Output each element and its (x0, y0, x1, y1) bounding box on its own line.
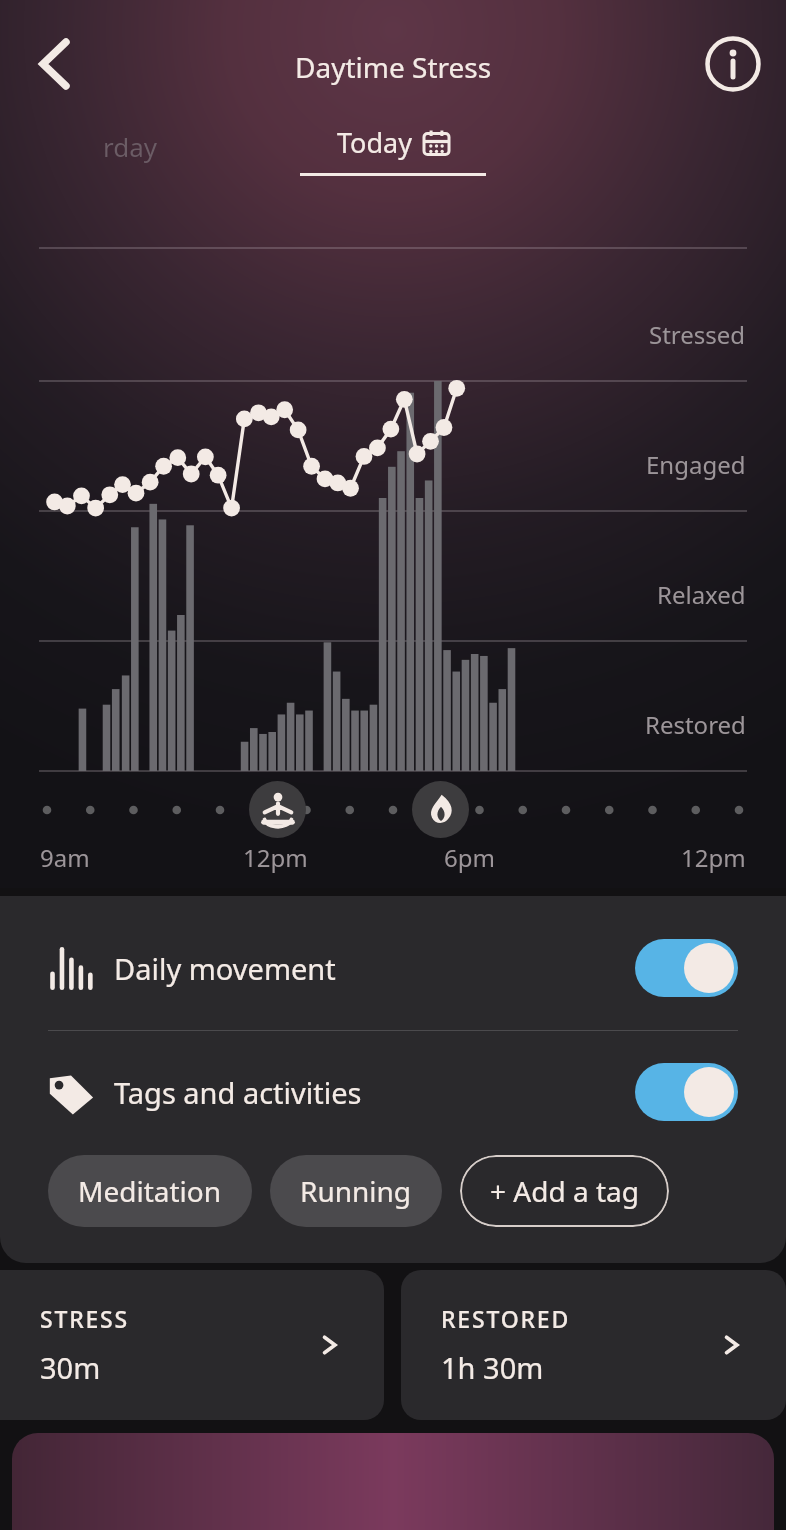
button[interactable]: Toggle (635, 939, 738, 997)
button[interactable]: STRESS (0, 1270, 384, 1420)
staticText: 9am (40, 841, 90, 874)
staticText: Restored (645, 708, 746, 741)
staticText: + Add a tag (490, 1172, 639, 1210)
staticText: Tags and activities (114, 1073, 362, 1112)
staticText: 12pm (681, 841, 746, 874)
button[interactable]: Meditation (249, 781, 306, 838)
staticText: 6pm (444, 841, 495, 874)
staticText: Running (300, 1172, 412, 1210)
staticText: Relaxed (657, 578, 746, 611)
button[interactable] (12, 1433, 774, 1530)
staticText: 1h 30m (441, 1348, 544, 1387)
button[interactable]: + Add a tag (460, 1155, 669, 1227)
staticText: 30m (40, 1348, 101, 1387)
button[interactable]: Meditation (48, 1155, 252, 1227)
button[interactable]: rday (103, 129, 158, 164)
button[interactable]: Toggle (635, 1063, 738, 1121)
staticText: Daytime Stress (295, 48, 492, 86)
button[interactable]: RESTORED (401, 1270, 786, 1420)
staticText: RESTORED (441, 1303, 571, 1334)
button[interactable]: Running (270, 1155, 442, 1227)
staticText: Meditation (78, 1172, 222, 1210)
staticText: STRESS (40, 1303, 130, 1334)
staticText: Stressed (649, 318, 746, 351)
button[interactable]: Workout (412, 781, 469, 838)
staticText: Today (337, 124, 412, 161)
staticText: Daily movement (114, 949, 336, 988)
button[interactable]: Info (702, 33, 764, 95)
staticText: Engaged (646, 448, 746, 481)
staticText: 12pm (243, 841, 308, 874)
button[interactable]: Daily movement (0, 928, 786, 1008)
button[interactable]: Back (18, 28, 90, 100)
button[interactable]: Tags and activities (0, 1051, 786, 1133)
button[interactable]: Today (300, 124, 486, 176)
